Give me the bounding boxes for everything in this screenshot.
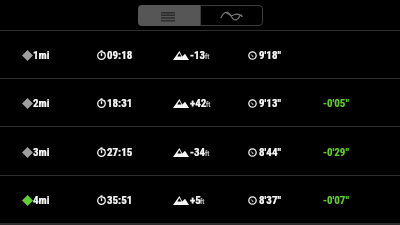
staticText: ft (200, 198, 205, 206)
staticText: 8'37" (259, 194, 281, 207)
staticText: ft (205, 53, 210, 61)
button[interactable]: 4mi (0, 176, 400, 224)
staticText: -13 (190, 49, 206, 62)
staticText: 3mi (33, 146, 50, 159)
staticText: 9'13" (259, 97, 281, 110)
staticText: 1mi (33, 49, 50, 62)
staticText: 9'18" (259, 49, 281, 62)
button[interactable]: 2mi (0, 79, 400, 127)
staticText: 27:15 (107, 146, 133, 159)
staticText: ft (206, 101, 211, 109)
staticText: -34 (190, 146, 206, 159)
staticText: +42 (190, 97, 207, 110)
staticText: 2mi (33, 97, 50, 110)
staticText: -0'07" (323, 194, 349, 207)
staticText: 8'44" (259, 146, 281, 159)
staticText: +5 (190, 194, 201, 207)
staticText: 18:31 (107, 97, 133, 110)
staticText: 09:18 (107, 49, 133, 62)
staticText: 4mi (33, 194, 50, 207)
button[interactable]: Chart view (200, 5, 263, 26)
button[interactable]: 1mi (0, 31, 400, 79)
staticText: 35:51 (107, 194, 133, 207)
staticText: ft (205, 150, 210, 158)
staticText: -0'29" (323, 146, 349, 159)
staticText: -0'05" (323, 97, 349, 110)
button[interactable]: 3mi (0, 128, 400, 176)
button[interactable]: List view (138, 5, 200, 26)
